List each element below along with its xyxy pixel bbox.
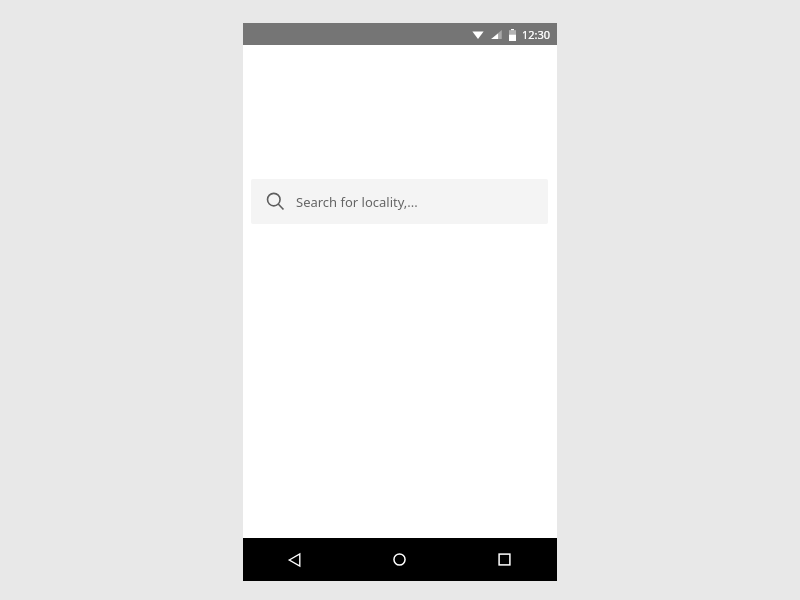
button[interactable]: Search for locality,... bbox=[251, 179, 548, 224]
button[interactable]: Back bbox=[243, 538, 347, 581]
button[interactable]: Recent apps bbox=[452, 538, 557, 581]
staticText: 12:30 bbox=[522, 27, 551, 42]
button[interactable]: Home bbox=[347, 538, 452, 581]
staticText: Search for locality,... bbox=[296, 193, 418, 211]
